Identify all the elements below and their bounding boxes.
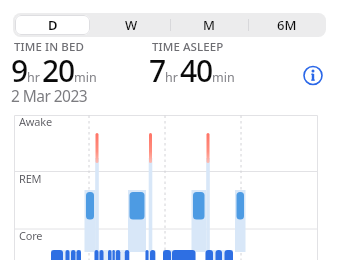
staticText: Core xyxy=(19,228,43,243)
staticText: hr xyxy=(27,69,40,86)
staticText: 6M xyxy=(277,16,297,34)
staticText: TIME IN BED xyxy=(14,39,84,55)
staticText: Awake xyxy=(19,114,52,129)
button[interactable] xyxy=(302,64,324,86)
staticText: 2 Mar 2023 xyxy=(11,85,88,106)
staticText: D xyxy=(48,16,58,34)
button[interactable]: M xyxy=(170,13,248,37)
button[interactable]: D xyxy=(15,15,90,35)
staticText: TIME ASLEEP xyxy=(152,39,224,55)
staticText: 20 xyxy=(42,50,74,91)
staticText: 40 xyxy=(180,50,212,91)
staticText: min xyxy=(74,69,97,86)
button[interactable]: W xyxy=(92,13,170,37)
button[interactable]: 6M xyxy=(248,13,326,37)
staticText: W xyxy=(125,16,138,34)
staticText: min xyxy=(212,69,235,86)
staticText: M xyxy=(203,16,215,34)
staticText: REM xyxy=(19,171,42,186)
staticText: hr xyxy=(165,69,178,86)
staticText: 7 xyxy=(149,50,165,91)
staticText: 9 xyxy=(11,50,27,91)
